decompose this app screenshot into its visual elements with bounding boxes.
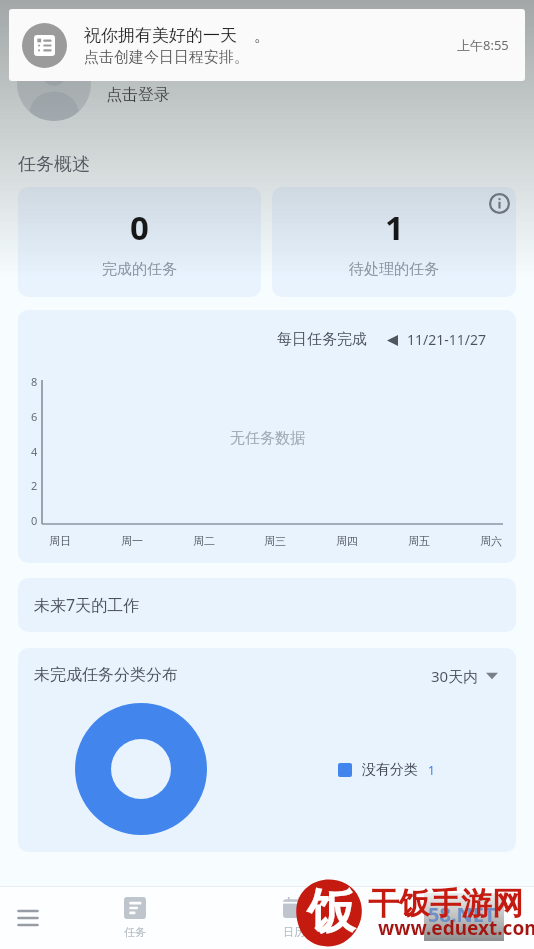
- staticText: 祝你拥有美好的一天 。: [84, 23, 271, 46]
- staticText: 周六: [480, 534, 502, 548]
- staticText: 6: [31, 409, 38, 424]
- staticText: 0: [130, 205, 149, 250]
- staticText: 4: [31, 444, 38, 459]
- staticText: 未来7天的工作: [34, 594, 140, 616]
- staticText: 任务概述: [18, 153, 90, 176]
- staticText: 8: [31, 374, 38, 389]
- staticText: 待处理的任务: [349, 260, 439, 279]
- staticText: 未完成任务分类分布: [34, 665, 178, 685]
- button[interactable]: 日历: [214, 887, 374, 949]
- button[interactable]: Previous week: [383, 331, 401, 349]
- staticText: 上午8:55: [457, 36, 509, 54]
- staticText: 11/21-11/27: [407, 330, 486, 349]
- staticText: 周五: [408, 534, 430, 548]
- staticText: 周三: [264, 534, 286, 548]
- button[interactable]: 任务: [55, 887, 214, 949]
- staticText: 日历: [283, 925, 305, 939]
- staticText: 2: [31, 478, 38, 493]
- button[interactable]: 1: [272, 187, 516, 297]
- staticText: 周二: [193, 534, 215, 548]
- staticText: 周一: [121, 534, 143, 548]
- staticText: 点击创建今日日程安排。: [84, 48, 249, 67]
- staticText: 任务: [124, 925, 146, 939]
- staticText: 我的: [443, 925, 465, 939]
- button[interactable]: 祝你拥有美好的一天 。: [9, 9, 525, 81]
- staticText: 1: [385, 205, 404, 250]
- staticText: 点击登录: [106, 85, 170, 105]
- button[interactable]: 未来7天的工作: [18, 578, 516, 632]
- staticText: 周日: [49, 534, 71, 548]
- staticText: 1: [428, 762, 435, 778]
- staticText: 30天内: [431, 666, 479, 686]
- staticText: 周四: [336, 534, 358, 548]
- button[interactable]: 我的: [374, 887, 534, 949]
- staticText: 无任务数据: [230, 429, 305, 448]
- button[interactable]: 0: [18, 187, 261, 297]
- button[interactable]: Menu: [0, 887, 55, 949]
- button[interactable]: 点击登录: [0, 44, 534, 124]
- staticText: 饭: [307, 882, 355, 942]
- staticText: 0: [31, 513, 38, 528]
- staticText: 干饭手游网: [368, 884, 523, 923]
- button[interactable]: Info: [489, 193, 510, 214]
- staticText: 没有分类: [362, 761, 418, 779]
- staticText: 每日任务完成: [277, 330, 367, 349]
- staticText: 完成的任务: [102, 260, 177, 279]
- staticText: 58.NET: [428, 901, 496, 928]
- staticText: www.eduext.com: [378, 915, 534, 941]
